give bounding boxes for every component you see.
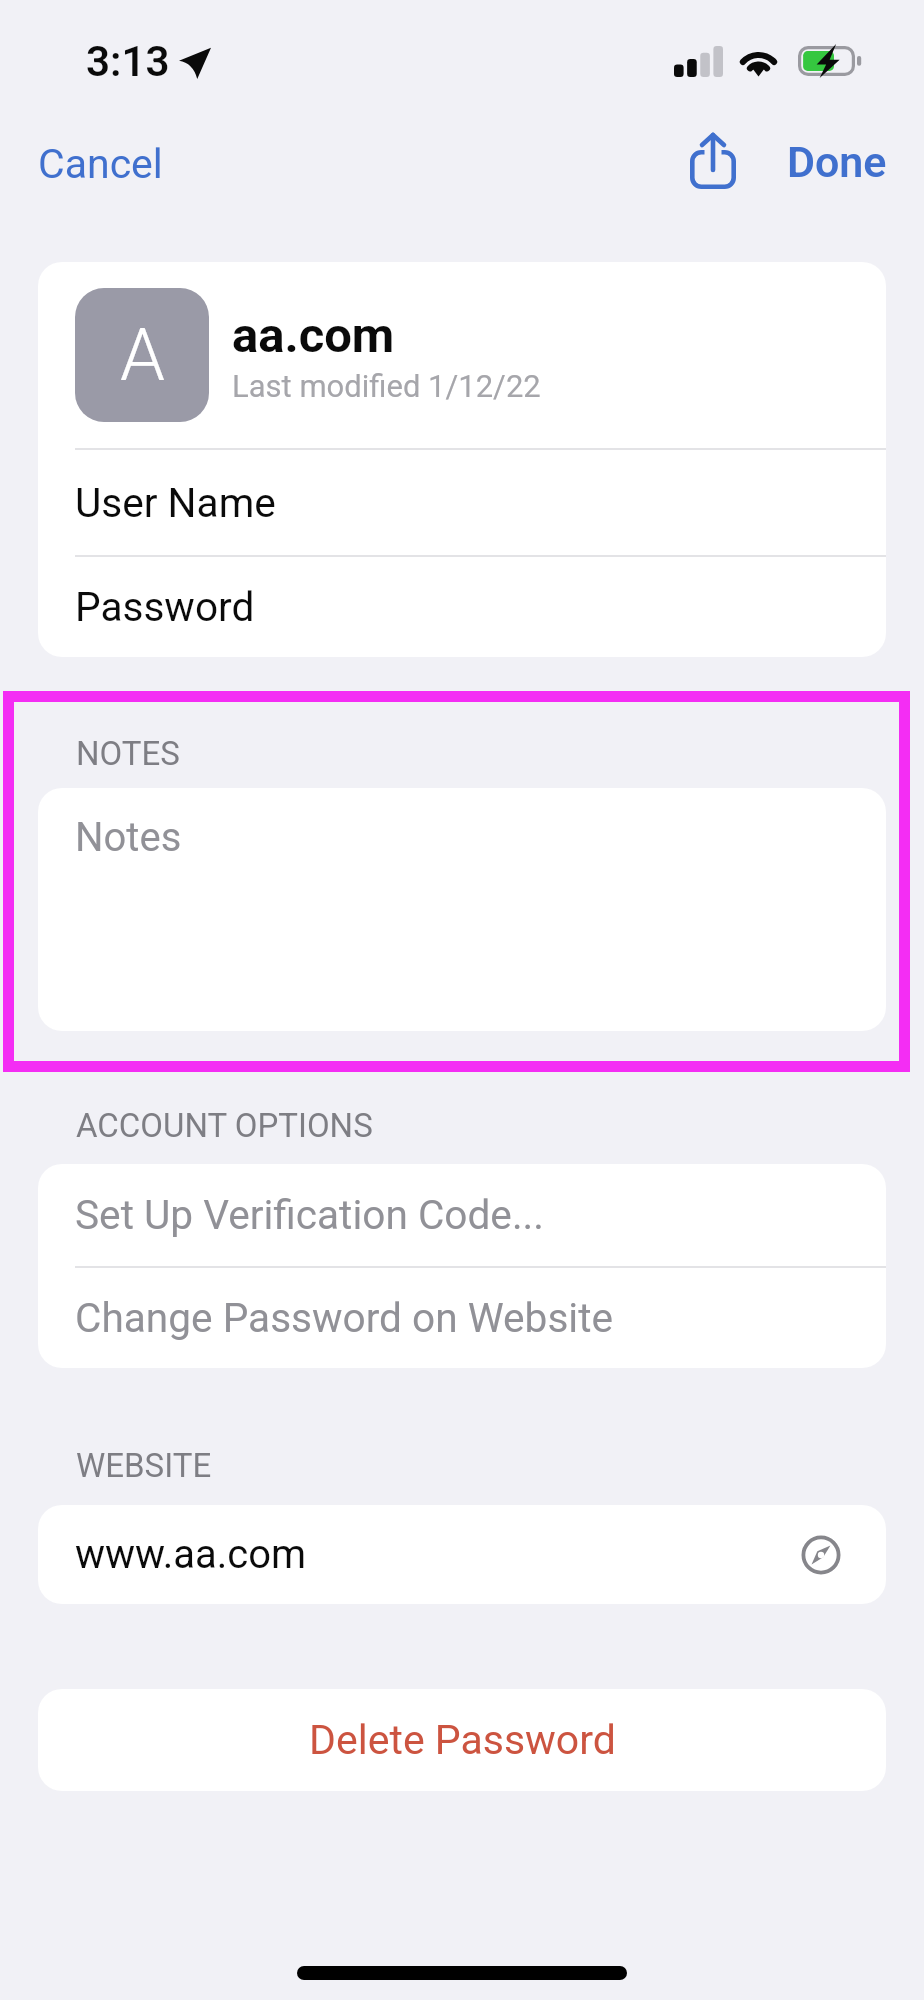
- button[interactable]: Change Password on Website: [38, 1268, 886, 1368]
- staticText: aa.com: [232, 307, 395, 364]
- staticText: Delete Password: [309, 1716, 616, 1764]
- button[interactable]: www.aa.com: [38, 1505, 886, 1604]
- staticText: User Name: [75, 479, 276, 527]
- button[interactable]: Set Up Verification Code...: [38, 1164, 886, 1266]
- staticText: Change Password on Website: [75, 1294, 614, 1342]
- staticText: Set Up Verification Code...: [75, 1191, 545, 1239]
- button[interactable]: Open in Safari: [799, 1533, 843, 1577]
- staticText: A: [120, 313, 165, 397]
- staticText: 3:13: [86, 37, 170, 86]
- button[interactable]: Done: [769, 123, 905, 201]
- staticText: Password: [75, 583, 255, 631]
- staticText: www.aa.com: [75, 1531, 307, 1578]
- staticText: Done: [787, 137, 887, 187]
- staticText: Cancel: [38, 140, 163, 188]
- button[interactable]: Password: [38, 557, 886, 657]
- staticText: NOTES: [76, 734, 180, 773]
- button[interactable]: Share: [670, 116, 756, 204]
- button[interactable]: Cancel: [19, 126, 182, 202]
- staticText: ACCOUNT OPTIONS: [76, 1106, 373, 1145]
- staticText: WEBSITE: [76, 1446, 212, 1485]
- button[interactable]: Delete Password: [38, 1689, 886, 1791]
- staticText: Notes: [75, 814, 182, 861]
- button[interactable]: Notes: [38, 788, 886, 1031]
- button[interactable]: User Name: [38, 450, 886, 555]
- button[interactable]: A: [38, 262, 886, 448]
- staticText: Last modified 1/12/22: [232, 368, 541, 404]
